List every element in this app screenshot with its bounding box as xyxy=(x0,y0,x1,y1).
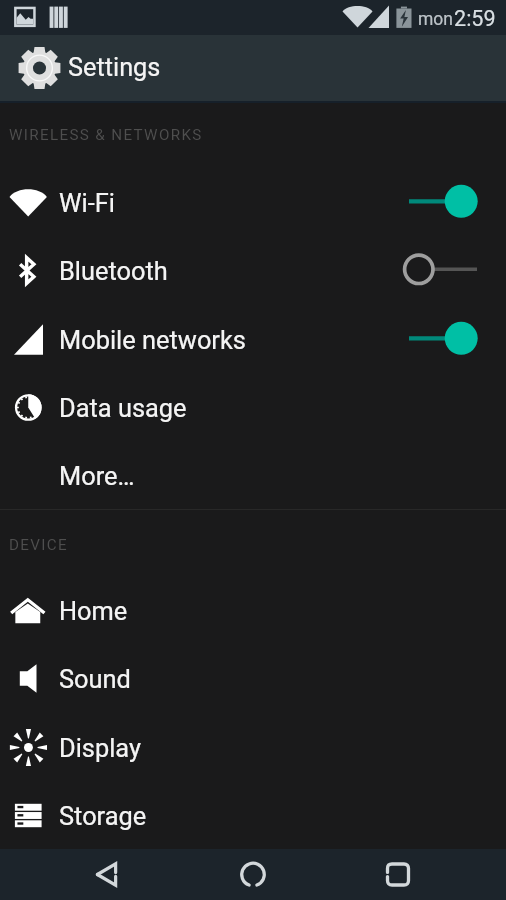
staticText: Bluetooth xyxy=(59,256,168,286)
staticText: Data usage xyxy=(59,393,187,423)
button[interactable]: Wi-Fi xyxy=(0,168,506,237)
staticText: 2:59 xyxy=(454,6,496,31)
button[interactable]: Home xyxy=(168,849,337,900)
staticText: WIRELESS & NETWORKS xyxy=(9,126,203,144)
button[interactable]: Mobile networks xyxy=(0,305,506,374)
staticText: Sound xyxy=(59,664,131,694)
staticText: Settings xyxy=(68,53,161,83)
staticText: Mobile networks xyxy=(59,325,246,355)
staticText: Home xyxy=(59,596,128,626)
staticText: Storage xyxy=(59,801,147,831)
staticText: mon xyxy=(418,9,453,30)
button[interactable]: Recents xyxy=(337,849,506,900)
button[interactable]: Home xyxy=(0,576,506,645)
button[interactable]: Storage xyxy=(0,781,506,850)
staticText: Display xyxy=(59,733,142,763)
staticText: More… xyxy=(59,461,135,491)
staticText: Wi-Fi xyxy=(59,188,115,218)
button[interactable]: Sound xyxy=(0,644,506,713)
button[interactable]: Back xyxy=(0,849,168,900)
button[interactable]: Bluetooth xyxy=(0,236,506,305)
button[interactable]: More… xyxy=(0,441,506,510)
button[interactable]: Data usage xyxy=(0,373,506,442)
button[interactable]: Display xyxy=(0,713,506,782)
staticText: DEVICE xyxy=(9,536,69,554)
